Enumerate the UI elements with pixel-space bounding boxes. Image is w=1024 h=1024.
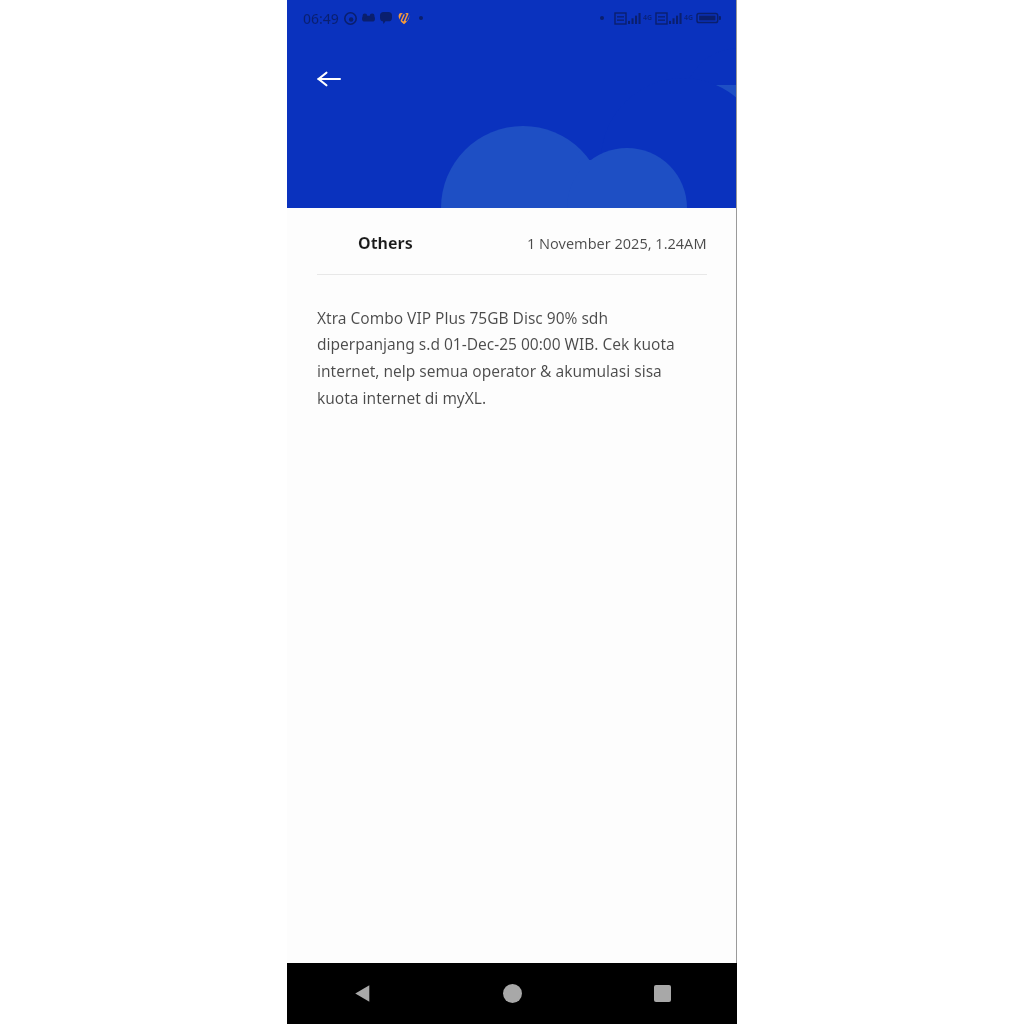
staticText: Xtra Combo VIP Plus 75GB Disc 90% sdh di…: [317, 307, 705, 409]
staticText: 1 November 2025, 1.24AM: [527, 233, 707, 253]
staticText: 06:49: [303, 9, 339, 28]
button[interactable]: Back: [307, 57, 351, 101]
staticText: 4G: [643, 13, 653, 23]
button[interactable]: Recent apps: [587, 963, 737, 1024]
button[interactable]: Home: [437, 963, 587, 1024]
staticText: 4G: [684, 13, 694, 23]
button[interactable]: Back: [287, 963, 437, 1024]
staticText: Others: [358, 232, 413, 254]
